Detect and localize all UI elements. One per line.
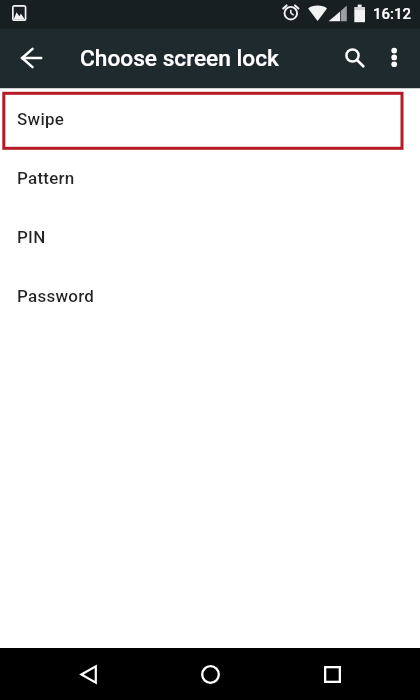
button[interactable]: Navigate up bbox=[8, 35, 54, 81]
button[interactable]: Password bbox=[0, 266, 420, 325]
button[interactable]: Swipe bbox=[0, 89, 420, 148]
button[interactable]: Recent apps bbox=[308, 650, 356, 698]
button[interactable]: Home bbox=[186, 650, 234, 698]
button[interactable]: Pattern bbox=[0, 148, 420, 207]
button[interactable]: Search bbox=[331, 35, 377, 81]
staticText: Swipe bbox=[17, 109, 65, 129]
button[interactable]: PIN bbox=[0, 207, 420, 266]
button[interactable]: More options bbox=[374, 35, 414, 75]
staticText: PIN bbox=[17, 227, 46, 247]
staticText: Pattern bbox=[17, 168, 75, 188]
staticText: Choose screen lock bbox=[80, 45, 279, 72]
button[interactable]: Back bbox=[64, 650, 112, 698]
staticText: 16:12 bbox=[373, 5, 412, 23]
staticText: Password bbox=[17, 286, 95, 306]
